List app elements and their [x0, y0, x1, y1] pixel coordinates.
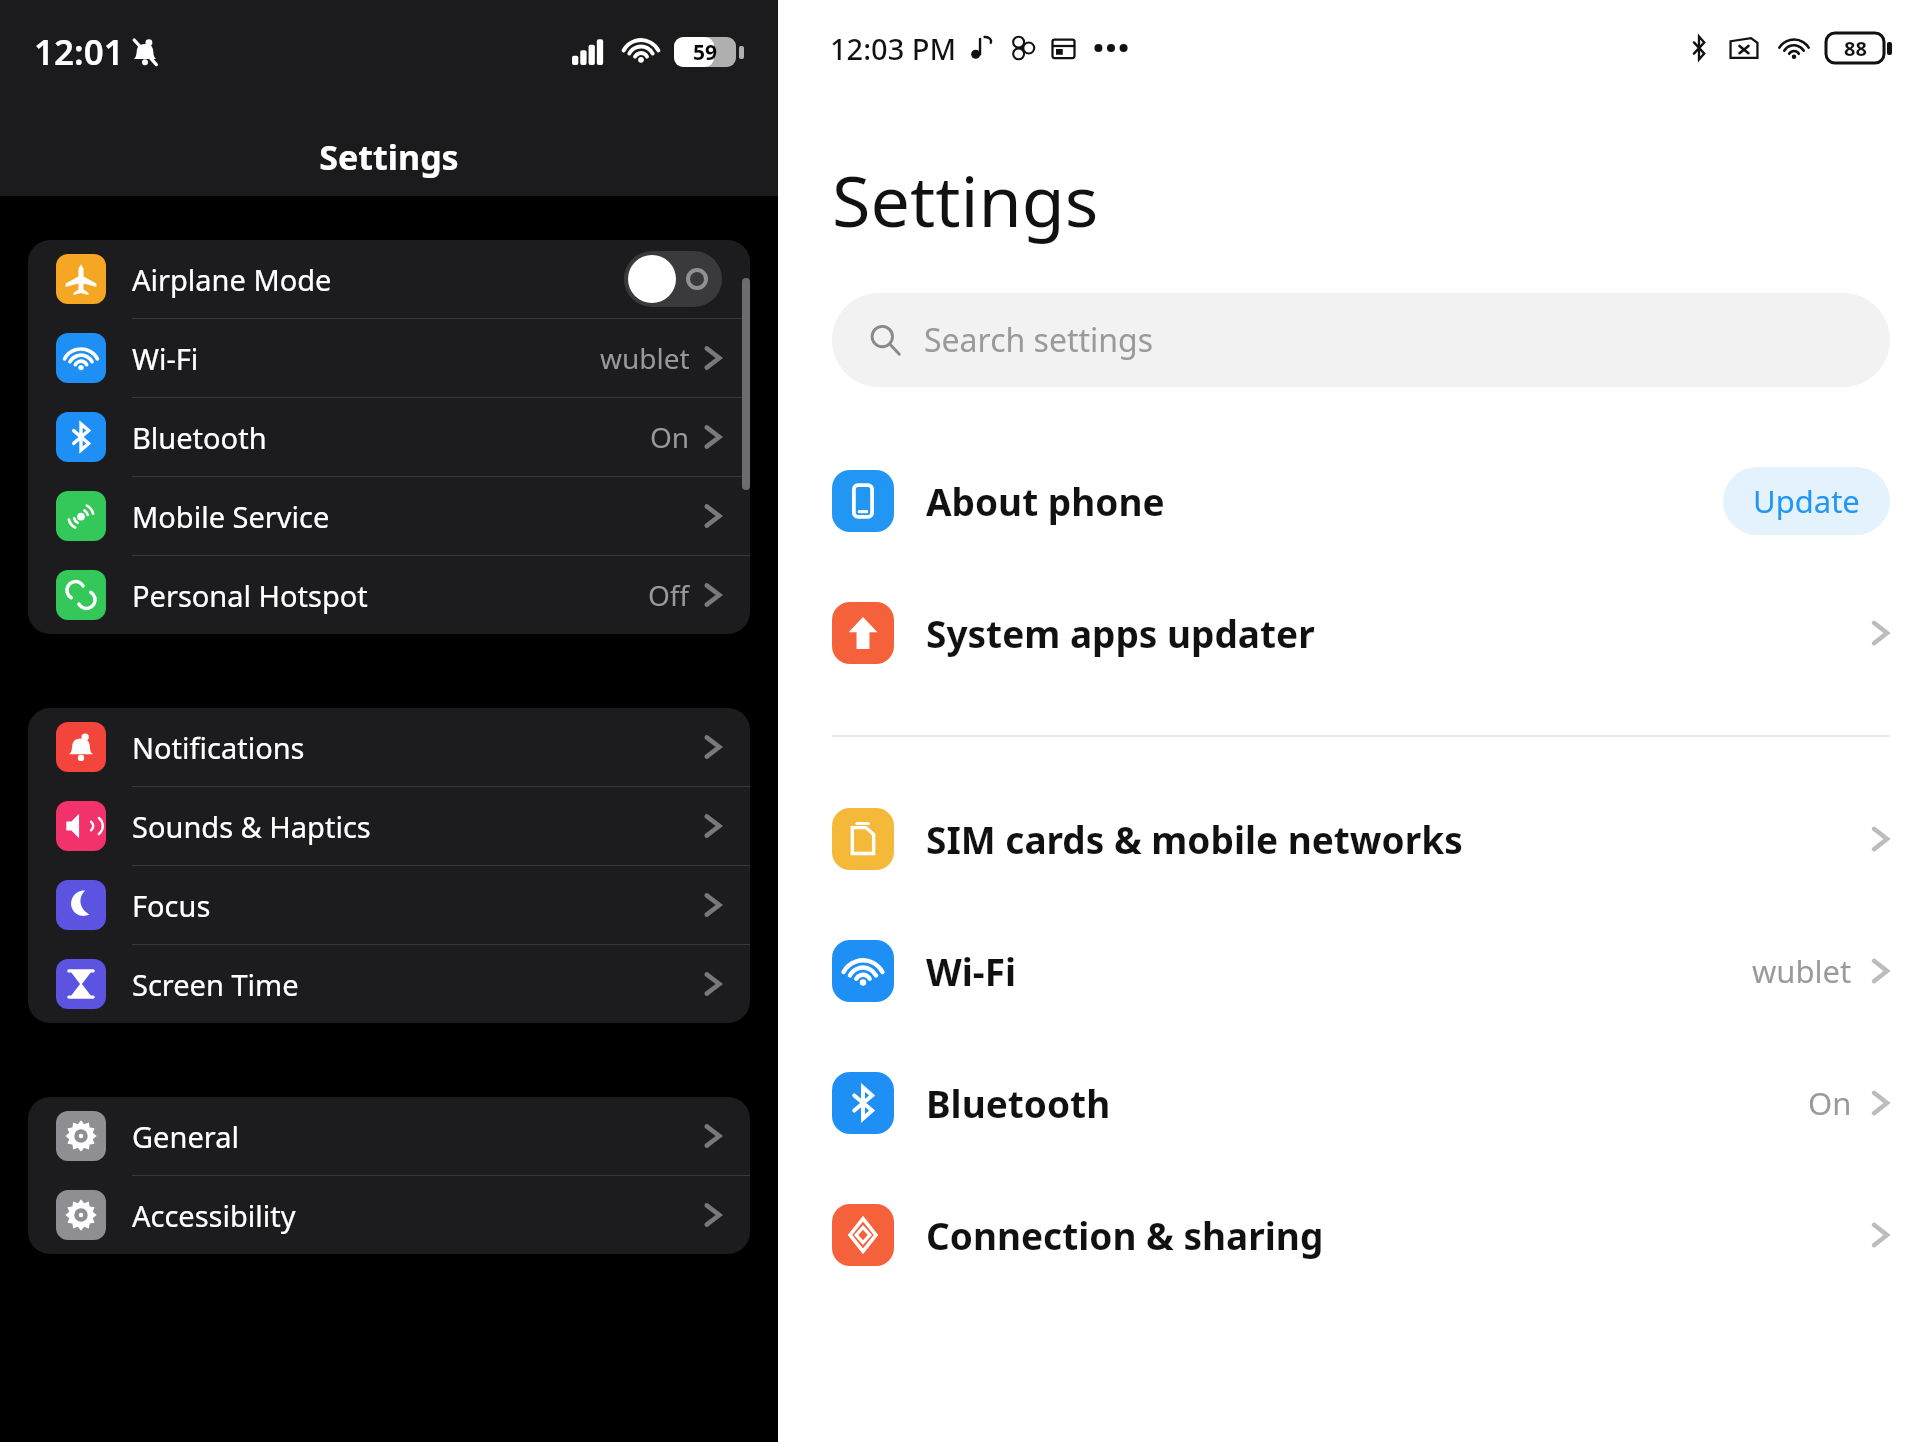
staticText: wublet — [1752, 950, 1852, 992]
button[interactable]: Bluetooth — [802, 1037, 1920, 1169]
button[interactable]: General — [28, 1097, 750, 1176]
button[interactable]: Accessibility — [28, 1176, 750, 1254]
button[interactable]: Notifications — [28, 708, 750, 787]
staticText: Update — [1753, 480, 1860, 522]
staticText: 59 — [693, 38, 718, 67]
staticText: Bluetooth — [132, 418, 267, 457]
staticText: Search settings — [924, 318, 1154, 362]
staticText: Bluetooth — [926, 1078, 1111, 1128]
button[interactable]: Connection & sharing — [802, 1169, 1920, 1301]
staticText: 12:03 PM — [830, 29, 957, 68]
staticText: On — [650, 418, 690, 456]
staticText: SIM cards & mobile networks — [926, 814, 1463, 864]
button[interactable]: Wi-Fi — [802, 905, 1920, 1037]
staticText: 88 — [1844, 35, 1867, 62]
button[interactable]: Toggle Airplane Mode — [624, 251, 722, 307]
button[interactable]: System apps updater — [802, 567, 1920, 699]
button[interactable]: Bluetooth — [28, 398, 750, 477]
staticText: Accessibility — [132, 1196, 296, 1235]
staticText: Focus — [132, 886, 211, 925]
button[interactable]: Update — [1723, 467, 1890, 535]
staticText: General — [132, 1117, 239, 1156]
button[interactable]: Screen Time — [28, 945, 750, 1023]
staticText: Mobile Service — [132, 497, 330, 536]
staticText: Wi-Fi — [926, 946, 1017, 996]
staticText: Airplane Mode — [132, 260, 332, 299]
staticText: Personal Hotspot — [132, 576, 368, 615]
staticText: On — [1808, 1082, 1852, 1124]
staticText: About phone — [926, 476, 1165, 526]
button[interactable]: Airplane Mode — [28, 240, 750, 319]
button[interactable]: Sounds & Haptics — [28, 787, 750, 866]
staticText: Sounds & Haptics — [132, 807, 371, 846]
staticText: Notifications — [132, 728, 305, 767]
staticText: System apps updater — [926, 608, 1315, 658]
button[interactable]: Mobile Service — [28, 477, 750, 556]
button[interactable]: About phone — [802, 435, 1920, 567]
button[interactable]: Search settings — [832, 293, 1890, 387]
button[interactable]: Personal Hotspot — [28, 556, 750, 634]
button[interactable]: Focus — [28, 866, 750, 945]
staticText: Settings — [832, 152, 1099, 247]
staticText: Wi-Fi — [132, 339, 199, 378]
staticText: Off — [648, 576, 690, 614]
staticText: Screen Time — [132, 965, 299, 1004]
staticText: 12:01 — [34, 28, 124, 76]
staticText: wublet — [600, 339, 690, 377]
button[interactable]: Wi-Fi — [28, 319, 750, 398]
button[interactable]: SIM cards & mobile networks — [802, 773, 1920, 905]
staticText: Connection & sharing — [926, 1210, 1324, 1260]
staticText: Settings — [319, 134, 459, 180]
